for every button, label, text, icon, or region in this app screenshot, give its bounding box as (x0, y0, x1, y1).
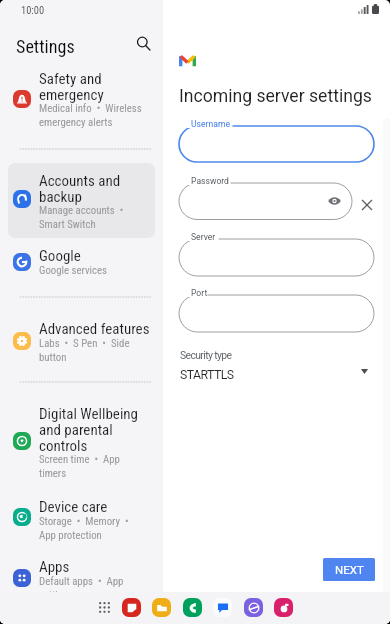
button[interactable]: Search (132, 32, 155, 55)
button[interactable]: My Files (152, 598, 171, 617)
button[interactable] (8, 491, 155, 545)
button[interactable] (8, 398, 155, 482)
staticText: Apps (39, 558, 70, 576)
button[interactable]: Internet (244, 598, 263, 617)
staticText: Medical info • Wireless emergency alerts (39, 102, 142, 128)
staticText: Username (191, 119, 230, 129)
staticText: Google (39, 247, 81, 265)
button[interactable]: Messages (213, 598, 232, 617)
staticText: Security type (180, 349, 232, 361)
button[interactable] (8, 313, 155, 369)
button[interactable]: STARTTLS (179, 364, 368, 384)
staticText: Default apps • App settings (39, 575, 124, 601)
staticText: NEXT (335, 563, 364, 576)
staticText: Digital Wellbeing and parental controls (39, 405, 139, 454)
staticText: Accounts and backup (39, 172, 121, 205)
staticText: Password (191, 176, 229, 186)
button[interactable] (8, 163, 155, 238)
staticText: Manage accounts • Smart Switch (39, 204, 124, 230)
button[interactable] (8, 242, 155, 284)
button[interactable]: Show password (326, 193, 342, 209)
staticText: Port (191, 288, 208, 298)
button[interactable] (8, 552, 155, 606)
staticText: Labs • S Pen • Side button (39, 337, 130, 363)
button[interactable]: Clear password (357, 195, 376, 214)
button[interactable]: Phone (183, 598, 202, 617)
staticText: Device care (39, 498, 108, 516)
staticText: Safety and emergency (39, 70, 104, 103)
staticText: Screen time • App timers (39, 453, 120, 479)
staticText: Advanced features (39, 320, 150, 338)
button[interactable]: All apps (94, 597, 115, 618)
staticText: Incoming server settings (179, 86, 372, 107)
button[interactable]: Camera (274, 598, 293, 617)
staticText: STARTTLS (180, 368, 234, 382)
staticText: 10:00 (21, 4, 45, 16)
staticText: Settings (16, 36, 75, 57)
button[interactable]: NEXT (323, 558, 375, 581)
button[interactable] (8, 64, 155, 137)
staticText: Storage • Memory • App protection (39, 515, 129, 541)
staticText: Server (191, 232, 216, 242)
button[interactable]: Samsung Notes (122, 598, 141, 617)
staticText: Google services (39, 264, 107, 277)
